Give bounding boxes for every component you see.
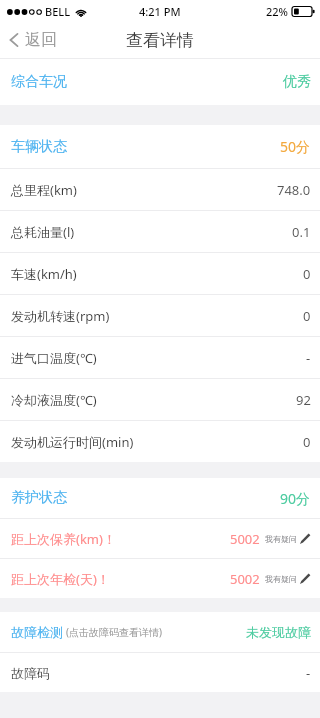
staticText: - (306, 664, 311, 682)
staticText: 748.0 (277, 181, 311, 199)
staticText: 92 (296, 391, 311, 409)
button[interactable]: 距上次年检(天)！ (0, 559, 320, 598)
button[interactable]: 距上次保养(km)！ (0, 519, 320, 558)
staticText: (点击故障码查看详情) (66, 625, 162, 639)
staticText: 我有疑问 (265, 574, 297, 584)
button[interactable]: 车辆状态 (0, 125, 320, 168)
staticText: 总耗油量(l) (11, 223, 75, 241)
staticText: - (306, 349, 311, 367)
staticText: 总里程(km) (11, 181, 77, 199)
button[interactable]: Edit (299, 533, 311, 545)
staticText: 进气口温度(℃) (11, 349, 97, 367)
button[interactable]: 进气口温度(℃) (0, 337, 320, 378)
button[interactable]: 车速(km/h) (0, 253, 320, 294)
staticText: 发动机运行时间(min) (11, 433, 134, 451)
button[interactable]: 冷却液温度(℃) (0, 379, 320, 420)
staticText: 22% (266, 4, 288, 19)
staticText: 4:21 PM (139, 4, 181, 19)
staticText: 发动机转速(rpm) (11, 307, 110, 325)
staticText: 车速(km/h) (11, 265, 77, 283)
staticText: 5002 (230, 530, 260, 548)
staticText: 故障检测 (11, 624, 63, 640)
button[interactable]: 养护状态 (0, 478, 320, 518)
staticText: 故障码 (11, 665, 50, 681)
button[interactable]: 综合车况 (0, 59, 320, 105)
button[interactable]: 总耗油量(l) (0, 211, 320, 252)
staticText: 90分 (280, 489, 311, 508)
staticText: 0 (303, 307, 311, 325)
staticText: 未发现故障 (246, 624, 311, 640)
staticText: 养护状态 (11, 489, 67, 507)
button[interactable]: 返回 (0, 25, 69, 55)
staticText: 返回 (25, 30, 57, 50)
staticText: 距上次保养(km)！ (11, 530, 116, 548)
button[interactable]: Edit (299, 573, 311, 585)
staticText: 查看详情 (126, 30, 194, 51)
staticText: BELL (45, 4, 71, 19)
button[interactable]: 发动机转速(rpm) (0, 295, 320, 336)
staticText: 50分 (280, 137, 311, 156)
staticText: 0 (303, 433, 311, 451)
staticText: 综合车况 (11, 73, 67, 91)
button[interactable]: 发动机运行时间(min) (0, 421, 320, 462)
staticText: 0 (303, 265, 311, 283)
staticText: 冷却液温度(℃) (11, 391, 97, 409)
staticText: 5002 (230, 570, 260, 588)
staticText: 我有疑问 (265, 534, 297, 544)
staticText: 0.1 (292, 223, 311, 241)
staticText: 车辆状态 (11, 138, 67, 156)
button[interactable]: 故障检测 (0, 612, 320, 652)
staticText: 优秀 (283, 73, 311, 91)
button[interactable]: 故障码 (0, 653, 320, 692)
staticText: 距上次年检(天)！ (11, 570, 110, 588)
button[interactable]: 总里程(km) (0, 169, 320, 210)
